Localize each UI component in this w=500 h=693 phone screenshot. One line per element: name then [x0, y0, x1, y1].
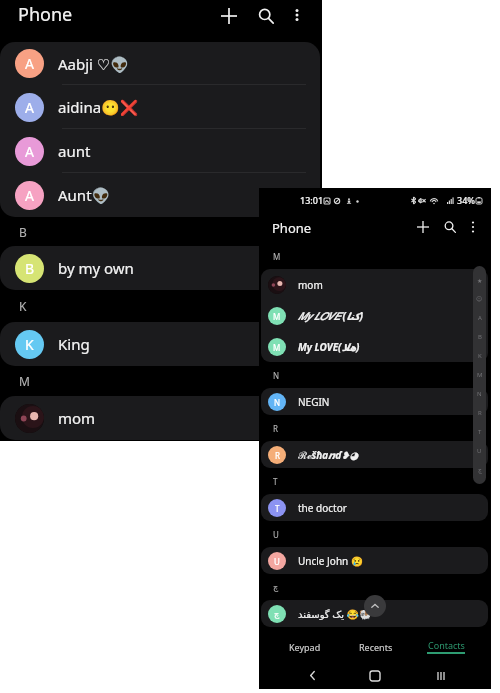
button[interactable]: چ — [261, 600, 488, 627]
staticText: ★ — [477, 277, 483, 284]
staticText: M — [273, 311, 281, 322]
staticText: My LOVE(هلا) — [298, 340, 360, 354]
staticText: T — [275, 503, 280, 514]
staticText: the doctor — [298, 501, 347, 515]
button[interactable]: Search — [438, 215, 462, 239]
button[interactable]: A — [0, 173, 320, 217]
staticText: ℛℯšħаոɗ❥◕ — [298, 448, 359, 462]
button[interactable]: A — [0, 85, 320, 129]
button[interactable]: Recents — [348, 631, 404, 662]
staticText: K — [25, 335, 34, 354]
staticText: 34% — [457, 194, 475, 206]
button[interactable]: More options — [461, 215, 485, 239]
staticText: R — [275, 450, 280, 461]
button[interactable]: Search — [249, 0, 282, 32]
button[interactable]: M — [261, 300, 488, 331]
staticText: ☺ — [476, 295, 483, 302]
staticText: T — [478, 428, 482, 436]
staticText: Recents — [359, 641, 393, 653]
staticText: Phone — [18, 2, 73, 27]
staticText: K — [19, 298, 27, 314]
button[interactable]: U — [261, 547, 488, 574]
staticText: aidina😶❌ — [58, 97, 139, 117]
staticText: A — [478, 314, 482, 322]
button[interactable]: N — [261, 388, 488, 415]
button[interactable]: A — [0, 129, 320, 173]
staticText: B — [19, 224, 27, 240]
staticText: K — [478, 352, 482, 360]
staticText: U — [273, 529, 279, 540]
staticText: M — [273, 251, 281, 262]
staticText: N — [477, 390, 482, 398]
staticText: M — [19, 373, 30, 389]
button[interactable]: mom — [0, 396, 320, 440]
staticText: King — [58, 334, 90, 354]
button[interactable]: Add — [212, 0, 245, 32]
button[interactable]: T — [261, 494, 488, 521]
staticText: A — [25, 54, 34, 73]
staticText: M — [273, 342, 281, 353]
button[interactable]: Scroll to top — [364, 595, 386, 617]
button[interactable]: Keypad — [277, 631, 333, 662]
staticText: aunt — [58, 141, 91, 161]
staticText: Phone — [272, 219, 312, 237]
staticText: چ — [273, 583, 279, 592]
staticText: by my own — [58, 258, 134, 278]
button[interactable]: B — [0, 246, 320, 290]
staticText: NEGIN — [298, 395, 330, 409]
staticText: 13:01 — [300, 194, 324, 206]
button[interactable]: More options — [281, 0, 313, 31]
button[interactable]: Contacts — [418, 631, 474, 662]
staticText: Keypad — [289, 641, 321, 653]
staticText: Contacts — [428, 639, 465, 651]
staticText: R — [273, 423, 278, 434]
button[interactable]: R — [261, 441, 488, 468]
staticText: mom — [298, 278, 323, 292]
staticText: B — [25, 259, 35, 278]
staticText: N — [274, 397, 281, 408]
button[interactable]: A — [0, 42, 320, 85]
staticText: Aunt👽 — [58, 185, 111, 205]
staticText: یک گوسفند 😂🐏 — [298, 607, 372, 621]
staticText: Uncle John 😢 — [298, 554, 364, 568]
staticText: U — [477, 447, 482, 455]
staticText: T — [273, 476, 278, 487]
staticText: M — [477, 371, 483, 379]
button[interactable]: M — [261, 331, 488, 362]
staticText: U — [274, 556, 280, 567]
staticText: A — [25, 98, 34, 117]
button[interactable]: Home — [361, 662, 389, 689]
button[interactable]: K — [0, 322, 320, 366]
staticText: B — [478, 333, 482, 341]
button[interactable]: Add — [411, 215, 435, 239]
staticText: 𝑀𝑦 𝐿𝑂𝑉𝐸 (كنا) — [298, 309, 364, 323]
button[interactable]: mom — [261, 269, 488, 300]
staticText: A — [25, 142, 34, 161]
staticText: A — [25, 186, 34, 205]
staticText: چ — [274, 610, 280, 619]
staticText: N — [273, 370, 280, 381]
staticText: Aabji ♡👽 — [58, 54, 129, 74]
staticText: mom — [58, 408, 96, 428]
button[interactable]: Back — [298, 662, 326, 689]
button[interactable]: Recents — [427, 662, 455, 689]
staticText: R — [478, 409, 482, 417]
staticText: چ — [478, 466, 482, 473]
